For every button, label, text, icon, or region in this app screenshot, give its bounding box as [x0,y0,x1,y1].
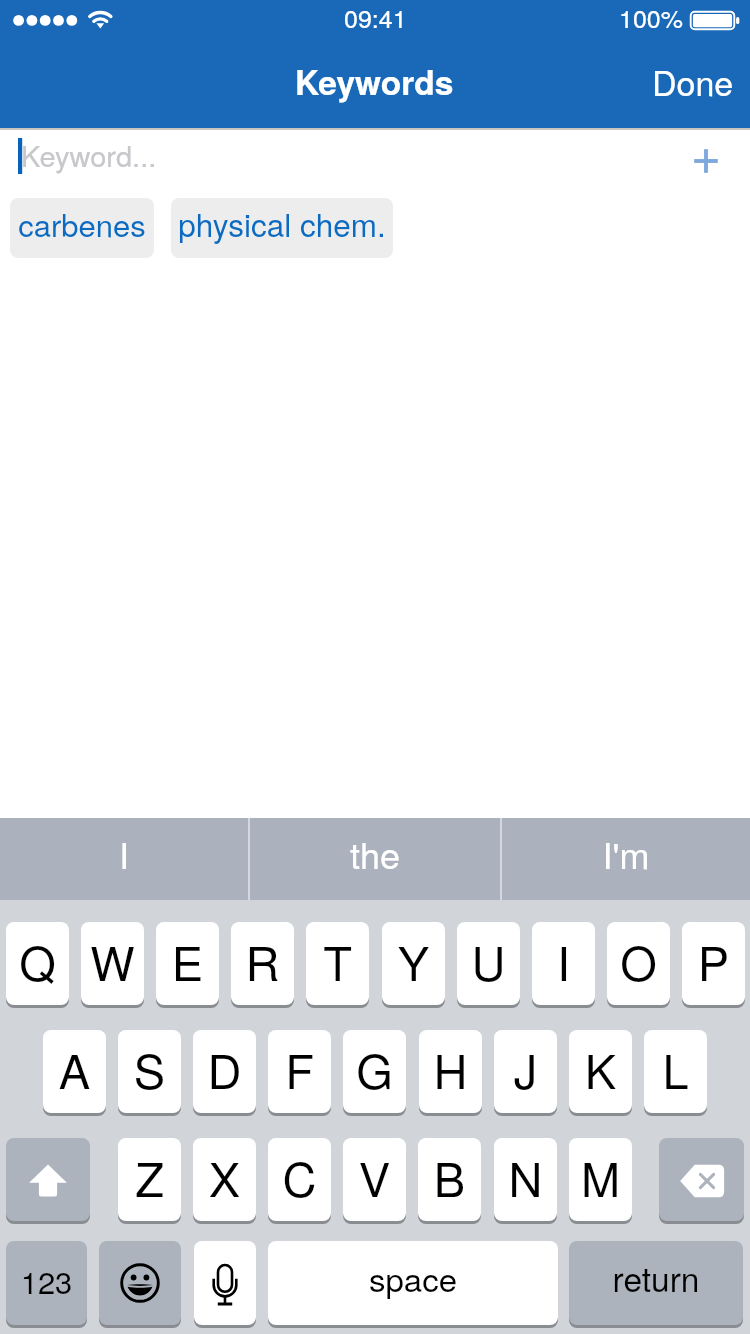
button[interactable]: G [343,1030,406,1113]
button[interactable]: V [343,1138,406,1221]
button[interactable]: Emoji [99,1241,181,1325]
button[interactable]: Z [118,1138,181,1221]
button[interactable]: the [250,818,500,900]
button[interactable]: Add keyword [682,137,730,185]
staticText: I [532,927,595,994]
staticText: Z [118,1143,181,1210]
staticText: S [118,1035,181,1102]
button[interactable]: P [682,922,745,1005]
staticText: G [343,1035,406,1102]
staticText: F [268,1035,331,1102]
button[interactable]: E [156,922,219,1005]
button[interactable]: L [644,1030,707,1113]
staticText: space [268,1254,558,1301]
button[interactable]: space [268,1241,558,1325]
staticText: A [43,1035,106,1102]
staticText: Keyword... [21,134,157,176]
button[interactable]: W [81,922,144,1005]
staticText: W [81,927,144,994]
staticText: B [418,1143,481,1210]
staticText: D [193,1035,256,1102]
button[interactable]: R [231,922,294,1005]
button[interactable]: Backspace [659,1138,744,1221]
button[interactable]: 123 [6,1241,87,1325]
button[interactable]: C [268,1138,331,1221]
button[interactable]: K [569,1030,632,1113]
staticText: R [231,927,294,994]
button[interactable]: B [418,1138,481,1221]
button[interactable]: physical chem. [171,198,393,258]
staticText: P [682,927,745,994]
staticText: K [569,1035,632,1102]
staticText: I'm [502,828,750,880]
button[interactable]: I'm [502,818,750,900]
button[interactable]: H [419,1030,482,1113]
staticText: U [457,927,520,994]
staticText: X [193,1143,256,1210]
staticText: L [644,1035,707,1102]
staticText: C [268,1143,331,1210]
button[interactable]: carbenes [10,198,154,258]
staticText: return [569,1254,743,1302]
staticText: N [494,1143,557,1210]
staticText: H [419,1035,482,1102]
staticText: E [156,927,219,994]
staticText: T [306,927,369,994]
button[interactable]: O [607,922,670,1005]
staticText: I [0,828,248,880]
button[interactable]: U [457,922,520,1005]
button[interactable]: T [306,922,369,1005]
button[interactable]: D [193,1030,256,1113]
button[interactable]: X [193,1138,256,1221]
staticText: Q [6,927,69,994]
staticText: Done [652,57,734,106]
staticText: physical chem. [171,201,393,246]
button[interactable]: I [532,922,595,1005]
staticText: J [494,1035,557,1102]
button[interactable]: I [0,818,248,900]
staticText: O [607,927,670,994]
staticText: V [343,1143,406,1210]
staticText: Keywords [295,57,454,105]
button[interactable]: A [43,1030,106,1113]
staticText: 123 [6,1258,87,1302]
button[interactable]: Q [6,922,69,1005]
button[interactable]: F [268,1030,331,1113]
button[interactable]: Dictation [194,1241,256,1325]
button[interactable]: Shift [6,1138,90,1221]
button[interactable]: S [118,1030,181,1113]
staticText: carbenes [10,201,154,245]
button[interactable]: return [569,1241,743,1325]
staticText: the [250,828,500,880]
button[interactable]: M [569,1138,632,1221]
button[interactable]: Done [640,52,744,104]
staticText: 09:41 [344,0,407,35]
staticText: M [569,1143,632,1210]
staticText: 100% [619,0,683,35]
button[interactable]: Y [382,922,445,1005]
button[interactable]: J [494,1030,557,1113]
button[interactable]: N [494,1138,557,1221]
staticText: Y [382,927,445,994]
